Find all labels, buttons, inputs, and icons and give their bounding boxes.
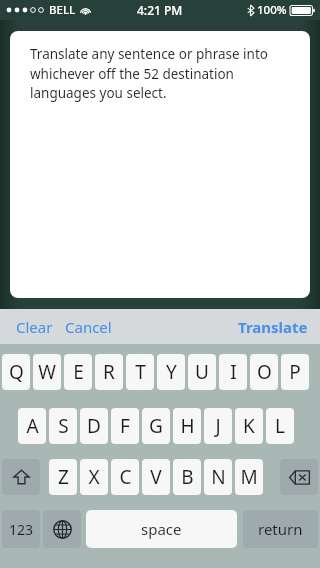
staticText: L xyxy=(275,413,285,439)
staticText: Z xyxy=(58,464,69,490)
staticText: A xyxy=(26,413,39,439)
staticText: B xyxy=(181,464,194,490)
button[interactable]: D xyxy=(80,408,108,444)
staticText: P xyxy=(289,359,301,385)
button[interactable]: P xyxy=(281,354,309,390)
staticText: M xyxy=(240,464,258,490)
staticText: BELL xyxy=(49,2,76,18)
staticText: G xyxy=(149,413,163,439)
button[interactable]: V xyxy=(142,459,170,495)
staticText: Cancel xyxy=(65,317,112,337)
staticText: Q xyxy=(9,359,24,385)
staticText: E xyxy=(73,359,84,385)
button[interactable]: Translate xyxy=(226,311,320,343)
staticText: W xyxy=(38,359,56,385)
button[interactable]: Translate any sentence or phrase into wh… xyxy=(10,31,310,298)
button[interactable]: Clear xyxy=(14,311,55,343)
button[interactable]: Z xyxy=(49,459,77,495)
button[interactable]: S xyxy=(49,408,77,444)
staticText: Clear xyxy=(16,317,53,337)
button[interactable]: B xyxy=(173,459,201,495)
button[interactable]: N xyxy=(204,459,232,495)
staticText: V xyxy=(150,464,162,490)
button[interactable]: L xyxy=(266,408,294,444)
button[interactable]: Y xyxy=(157,354,185,390)
button[interactable]: O xyxy=(250,354,278,390)
staticText: return xyxy=(258,519,303,539)
staticText: space xyxy=(141,519,182,539)
button[interactable]: H xyxy=(173,408,201,444)
staticText: 123 xyxy=(9,520,34,539)
staticText: Y xyxy=(166,359,177,385)
button[interactable]: J xyxy=(204,408,232,444)
button[interactable]: Shift xyxy=(2,459,40,495)
staticText: F xyxy=(120,413,130,439)
button[interactable]: A xyxy=(18,408,46,444)
button[interactable]: T xyxy=(126,354,154,390)
staticText: Translate any sentence or phrase into wh… xyxy=(30,45,296,102)
button[interactable]: 123 xyxy=(2,510,40,548)
staticText: N xyxy=(211,464,226,490)
staticText: 4:21 PM xyxy=(137,2,183,18)
staticText: J xyxy=(215,413,221,439)
staticText: I xyxy=(230,359,237,385)
button[interactable]: G xyxy=(142,408,170,444)
button[interactable]: U xyxy=(188,354,216,390)
button[interactable]: Cancel xyxy=(63,311,114,343)
button[interactable]: return xyxy=(243,510,318,548)
staticText: H xyxy=(180,413,195,439)
staticText: K xyxy=(243,413,255,439)
staticText: C xyxy=(119,464,132,490)
staticText: T xyxy=(135,359,146,385)
button[interactable]: F xyxy=(111,408,139,444)
button[interactable]: C xyxy=(111,459,139,495)
button[interactable]: Backspace xyxy=(280,459,318,495)
button[interactable]: M xyxy=(235,459,263,495)
staticText: Translate xyxy=(238,317,308,337)
staticText: 100% xyxy=(257,2,287,18)
staticText: U xyxy=(195,359,209,385)
button[interactable]: Q xyxy=(2,354,30,390)
staticText: R xyxy=(103,359,115,385)
button[interactable]: I xyxy=(219,354,247,390)
button[interactable]: space xyxy=(86,510,237,548)
button[interactable]: W xyxy=(33,354,61,390)
button[interactable]: Change keyboard language xyxy=(43,510,81,548)
button[interactable]: X xyxy=(80,459,108,495)
staticText: X xyxy=(88,464,100,490)
button[interactable]: E xyxy=(64,354,92,390)
button[interactable]: R xyxy=(95,354,123,390)
staticText: O xyxy=(257,359,272,385)
staticText: S xyxy=(58,413,69,439)
button[interactable]: K xyxy=(235,408,263,444)
staticText: D xyxy=(87,413,101,439)
